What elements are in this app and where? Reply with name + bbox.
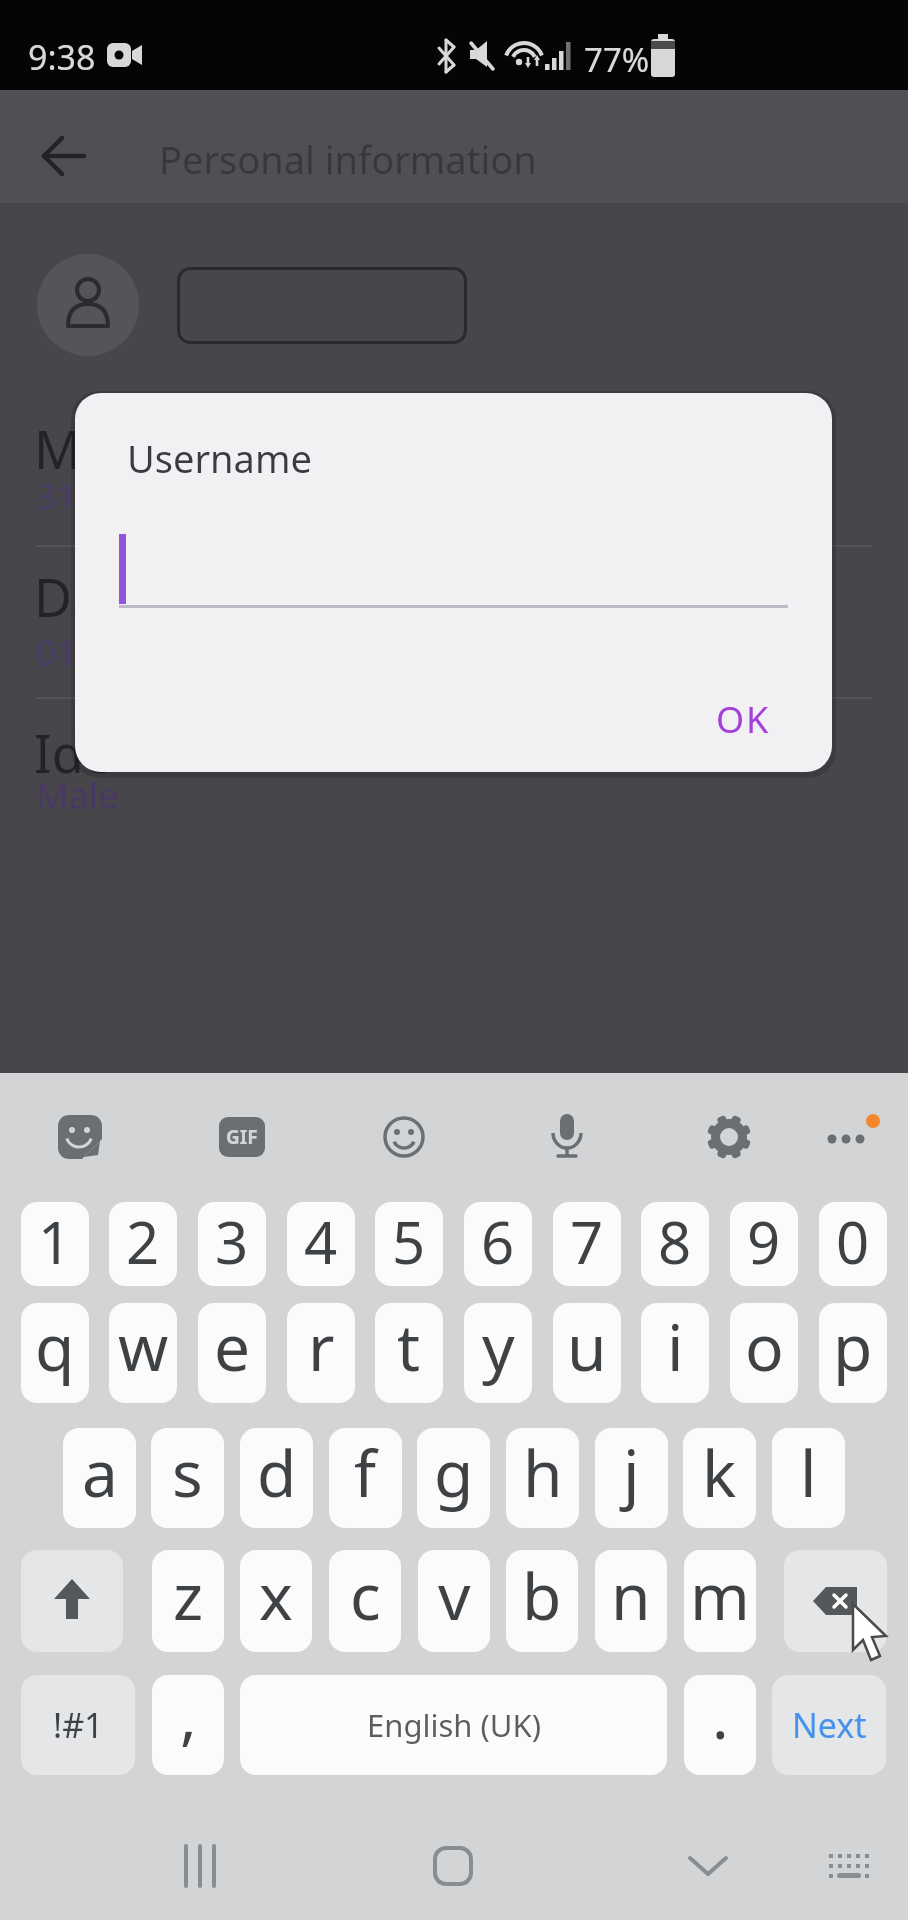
button[interactable] xyxy=(383,1116,425,1158)
button[interactable]: 7 xyxy=(553,1202,621,1286)
staticText: 77% xyxy=(584,37,650,82)
staticText: b xyxy=(522,1552,562,1639)
button[interactable]: f xyxy=(329,1428,402,1528)
button[interactable]: 2 xyxy=(109,1202,177,1286)
button[interactable]: d xyxy=(240,1428,313,1528)
staticText: a xyxy=(82,1429,118,1516)
staticText: n xyxy=(611,1552,651,1639)
button[interactable]: j xyxy=(595,1428,668,1528)
button[interactable]: p xyxy=(819,1303,887,1403)
staticText: Da xyxy=(34,561,102,632)
staticText: 5 xyxy=(392,1202,426,1281)
staticText: Next xyxy=(792,1702,867,1748)
staticText: 01, xyxy=(36,628,87,677)
staticText: 0 xyxy=(836,1202,870,1281)
staticText: OK xyxy=(716,695,771,744)
button[interactable]: 3 xyxy=(198,1202,266,1286)
staticText: p xyxy=(833,1303,873,1390)
button[interactable]: n xyxy=(595,1550,667,1652)
staticText: u xyxy=(567,1303,607,1390)
button[interactable]: s xyxy=(151,1428,224,1528)
button[interactable]: English (UK) xyxy=(240,1675,667,1775)
button[interactable]: o xyxy=(730,1303,798,1403)
staticText: x xyxy=(259,1552,293,1639)
button[interactable]: z xyxy=(152,1550,224,1652)
button[interactable]: h xyxy=(506,1428,579,1528)
button[interactable]: 0 xyxy=(819,1202,887,1286)
button[interactable]: . xyxy=(684,1675,756,1775)
button[interactable] xyxy=(824,1115,888,1159)
staticText: v xyxy=(438,1552,471,1639)
staticText: 4 xyxy=(304,1202,338,1281)
staticText: w xyxy=(118,1303,169,1390)
button[interactable] xyxy=(549,1112,585,1162)
staticText: , xyxy=(180,1675,197,1757)
button[interactable] xyxy=(433,1846,473,1886)
button[interactable]: w xyxy=(109,1303,177,1403)
button[interactable]: m xyxy=(684,1550,756,1652)
button[interactable]: t xyxy=(375,1303,443,1403)
staticText: !#1 xyxy=(53,1702,104,1748)
button[interactable]: !#1 xyxy=(21,1675,135,1775)
button[interactable]: q xyxy=(21,1303,89,1403)
button[interactable]: 8 xyxy=(641,1202,709,1286)
staticText: 31 xyxy=(36,472,78,521)
staticText: r xyxy=(308,1303,335,1390)
button[interactable]: 1 xyxy=(21,1202,89,1286)
staticText: 9 xyxy=(747,1202,781,1281)
button[interactable]: Next xyxy=(772,1675,886,1775)
button[interactable]: r xyxy=(287,1303,355,1403)
button[interactable]: k xyxy=(683,1428,756,1528)
staticText: Male xyxy=(36,771,119,820)
button[interactable] xyxy=(826,1848,872,1884)
button[interactable]: GIF xyxy=(219,1117,265,1157)
button[interactable]: x xyxy=(240,1550,312,1652)
button[interactable] xyxy=(58,1115,102,1159)
staticText: d xyxy=(257,1429,297,1516)
button[interactable]: 4 xyxy=(287,1202,355,1286)
staticText: y xyxy=(482,1303,515,1390)
staticText: f xyxy=(354,1429,377,1516)
staticText: k xyxy=(702,1429,737,1516)
button[interactable]: e xyxy=(198,1303,266,1403)
staticText: 2 xyxy=(126,1202,160,1281)
button[interactable]: 9 xyxy=(730,1202,798,1286)
button[interactable]: 5 xyxy=(375,1202,443,1286)
button[interactable]: v xyxy=(418,1550,490,1652)
button[interactable] xyxy=(177,267,467,344)
button[interactable]: i xyxy=(641,1303,709,1403)
staticText: e xyxy=(214,1303,251,1390)
button[interactable]: y xyxy=(464,1303,532,1403)
staticText: o xyxy=(745,1303,784,1390)
button[interactable] xyxy=(685,1848,731,1884)
button[interactable] xyxy=(38,132,90,180)
button[interactable]: c xyxy=(329,1550,401,1652)
staticText: c xyxy=(350,1552,381,1639)
staticText: 1 xyxy=(38,1202,72,1281)
button[interactable]: b xyxy=(506,1550,578,1652)
staticText: q xyxy=(35,1303,75,1390)
staticText: . xyxy=(712,1675,729,1757)
button[interactable] xyxy=(21,1550,123,1652)
button[interactable]: g xyxy=(417,1428,490,1528)
staticText: s xyxy=(172,1429,203,1516)
button[interactable] xyxy=(784,1550,887,1652)
staticText: z xyxy=(173,1552,204,1639)
staticText: j xyxy=(623,1429,640,1516)
button[interactable]: l xyxy=(772,1428,845,1528)
staticText: 7 xyxy=(570,1202,604,1281)
staticText: g xyxy=(434,1429,474,1516)
button[interactable]: , xyxy=(152,1675,224,1775)
button[interactable] xyxy=(172,1840,228,1892)
staticText: Username xyxy=(127,432,312,484)
staticText: My xyxy=(34,413,108,484)
staticText: m xyxy=(690,1552,750,1639)
button[interactable]: 6 xyxy=(464,1202,532,1286)
button[interactable]: OK xyxy=(688,683,798,755)
button[interactable]: a xyxy=(63,1428,136,1528)
staticText: t xyxy=(397,1303,421,1390)
button[interactable]: u xyxy=(553,1303,621,1403)
button[interactable] xyxy=(707,1115,751,1159)
staticText: English (UK) xyxy=(367,1704,541,1746)
staticText: l xyxy=(800,1429,817,1516)
